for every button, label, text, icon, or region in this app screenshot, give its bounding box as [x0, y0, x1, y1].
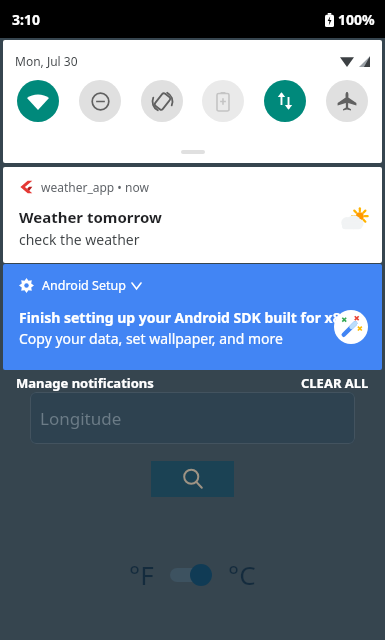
staticText: Android Setup [42, 277, 126, 294]
staticText: Copy your data, set wallpaper, and more [19, 329, 283, 348]
staticText: 100% [338, 10, 375, 29]
button[interactable]: Battery saver [202, 80, 244, 122]
staticText: Longitude [40, 407, 122, 430]
staticText: °C [228, 557, 256, 592]
staticText: CLEAR ALL [301, 374, 369, 392]
button[interactable]: Search [151, 461, 234, 497]
button[interactable]: CLEAR ALL [301, 374, 369, 392]
button[interactable]: Manage notifications [16, 374, 154, 392]
button[interactable]: Do not disturb [79, 80, 121, 122]
staticText: Manage notifications [16, 374, 154, 392]
button[interactable]: Auto rotate [141, 80, 183, 122]
button[interactable]: Longitude [30, 392, 355, 444]
button[interactable]: weather_app • now [3, 167, 382, 263]
staticText: 3:10 [12, 10, 40, 29]
staticText: °F [129, 557, 154, 592]
staticText: Finish setting up your Android SDK built… [19, 308, 349, 327]
staticText: Mon, Jul 30 [15, 53, 78, 69]
button[interactable]: Wi-Fi [17, 80, 59, 122]
button[interactable]: Airplane mode [326, 80, 368, 122]
staticText: check the weather [19, 230, 140, 249]
staticText: weather_app • now [41, 179, 149, 195]
button[interactable]: Temperature unit toggle [170, 564, 212, 586]
button[interactable]: Android Setup [3, 264, 382, 370]
button[interactable]: Mobile data [264, 80, 306, 122]
staticText: Weather tomorrow [19, 207, 162, 227]
